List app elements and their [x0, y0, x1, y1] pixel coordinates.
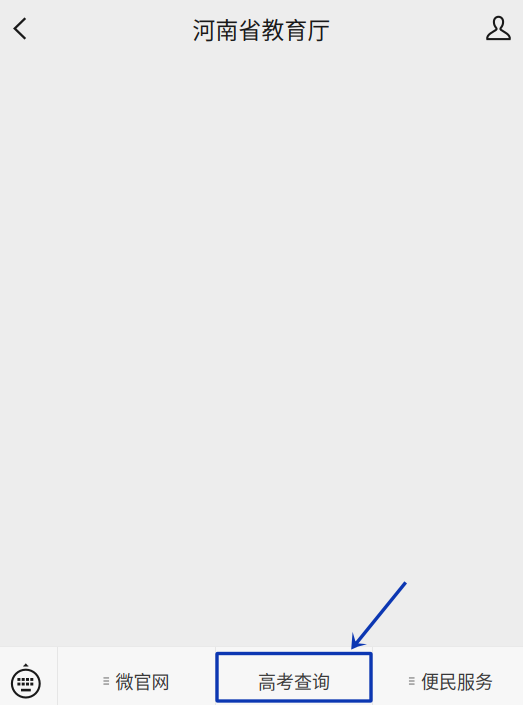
- button[interactable]: Back: [0, 0, 44, 57]
- button[interactable]: 高考查询: [216, 647, 372, 705]
- staticText: 河南省教育厅: [192, 12, 330, 45]
- staticText: 高考查询: [258, 668, 330, 694]
- staticText: 便民服务: [421, 668, 493, 694]
- button[interactable]: 便民服务: [373, 647, 523, 705]
- staticText: 微官网: [115, 668, 169, 694]
- button[interactable]: Keyboard: [0, 647, 57, 705]
- button[interactable]: 微官网: [58, 647, 215, 705]
- button[interactable]: Contacts: [477, 0, 523, 57]
